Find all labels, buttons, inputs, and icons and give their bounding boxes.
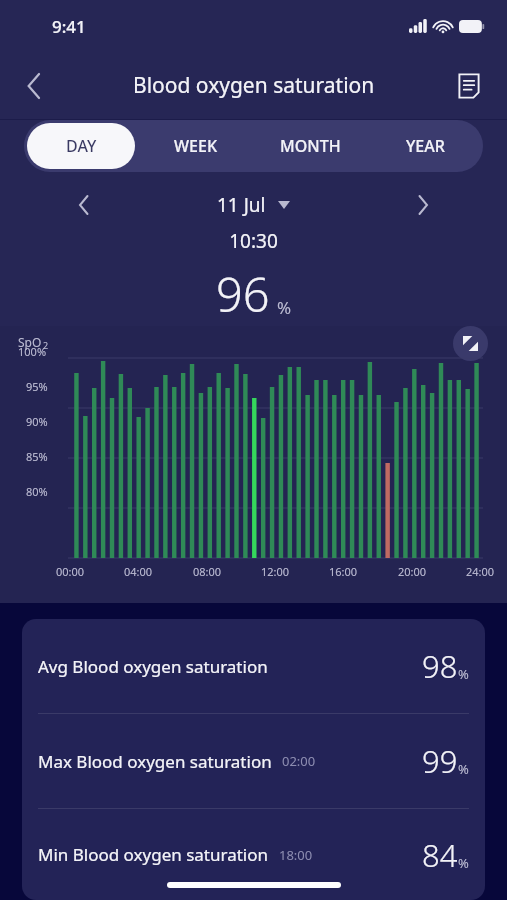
staticText: % — [458, 760, 469, 778]
staticText: 24:00 — [466, 564, 495, 579]
staticText: Blood oxygen saturation — [133, 71, 375, 100]
button[interactable]: YEAR — [371, 123, 480, 169]
staticText: 90% — [26, 414, 48, 429]
staticText: 85% — [26, 449, 48, 464]
button[interactable]: Min Blood oxygen saturation — [22, 809, 485, 900]
staticText: 100% — [18, 344, 47, 359]
staticText: 11 Jul — [217, 192, 266, 218]
staticText: 18:00 — [279, 846, 313, 864]
staticText: 00:00 — [56, 564, 85, 579]
staticText: % — [458, 854, 469, 872]
staticText: DAY — [66, 135, 97, 157]
staticText: 16:00 — [329, 564, 358, 579]
staticText: Max Blood oxygen saturation — [38, 750, 272, 773]
staticText: WEEK — [174, 135, 217, 157]
staticText: 12:00 — [261, 564, 290, 579]
staticText: Avg Blood oxygen saturation — [38, 655, 268, 678]
button[interactable]: Back — [12, 64, 56, 108]
button[interactable]: Previous day — [64, 188, 104, 222]
staticText: 84 — [422, 834, 458, 876]
button[interactable]: Notes — [447, 64, 491, 108]
staticText: 10:30 — [0, 228, 507, 254]
staticText: 95% — [26, 379, 48, 394]
button[interactable]: DAY — [27, 123, 135, 169]
button[interactable]: MONTH — [256, 123, 365, 169]
staticText: % — [277, 296, 292, 319]
staticText: % — [458, 665, 469, 683]
button[interactable]: Avg Blood oxygen saturation — [22, 619, 485, 713]
button[interactable]: Expand chart — [453, 326, 488, 361]
button[interactable]: Next day — [403, 188, 443, 222]
staticText: 98 — [422, 645, 458, 687]
staticText: 80% — [26, 484, 48, 499]
staticText: 96 — [216, 262, 270, 326]
staticText: 08:00 — [193, 564, 222, 579]
button[interactable]: Max Blood oxygen saturation — [22, 714, 485, 808]
staticText: 99 — [422, 740, 458, 782]
staticText: 04:00 — [124, 564, 153, 579]
staticText: 02:00 — [282, 752, 316, 770]
staticText: 2 — [43, 339, 49, 351]
staticText: Min Blood oxygen saturation — [38, 843, 269, 866]
button[interactable]: 11 Jul — [217, 192, 290, 218]
staticText: SpO — [18, 334, 42, 350]
staticText: 9:41 — [52, 15, 86, 38]
staticText: 20:00 — [398, 564, 427, 579]
staticText: MONTH — [280, 135, 341, 157]
staticText: YEAR — [406, 135, 445, 157]
button[interactable]: WEEK — [141, 123, 250, 169]
